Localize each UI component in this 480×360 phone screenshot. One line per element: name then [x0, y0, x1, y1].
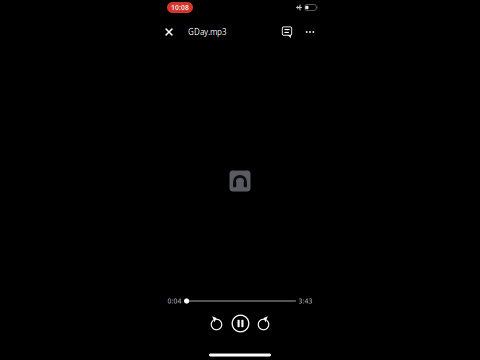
- button[interactable]: Captions: [277, 22, 297, 42]
- button[interactable]: Skip back 15 seconds: [206, 314, 226, 334]
- button[interactable]: Skip forward 15 seconds: [253, 314, 273, 334]
- staticText: 3:43: [298, 297, 312, 305]
- button[interactable]: Playback position, 0:04 of 3:43: [162, 292, 318, 310]
- staticText: GDay.mp3: [188, 27, 227, 37]
- staticText: 10:08: [171, 3, 189, 12]
- button[interactable]: More options: [300, 22, 320, 42]
- button[interactable]: Pause: [228, 311, 252, 335]
- button[interactable]: Close: [158, 21, 180, 43]
- staticText: 0:04: [167, 297, 181, 305]
